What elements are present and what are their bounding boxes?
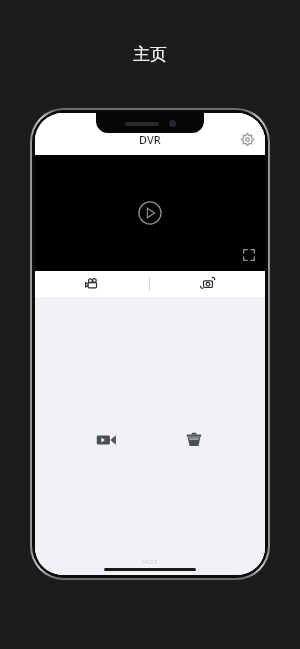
button[interactable]: Settings <box>235 127 259 151</box>
button[interactable]: Videos <box>89 423 123 457</box>
staticText: DVR <box>139 132 161 147</box>
staticText: V4.2.2 <box>143 559 158 566</box>
button[interactable]: Fullscreen <box>241 247 257 263</box>
button[interactable]: Record video <box>35 271 149 297</box>
staticText: 主页 <box>133 44 167 65</box>
button[interactable]: Play <box>137 200 163 226</box>
button[interactable]: Take photo <box>150 271 265 297</box>
button[interactable]: Delete <box>177 423 211 457</box>
